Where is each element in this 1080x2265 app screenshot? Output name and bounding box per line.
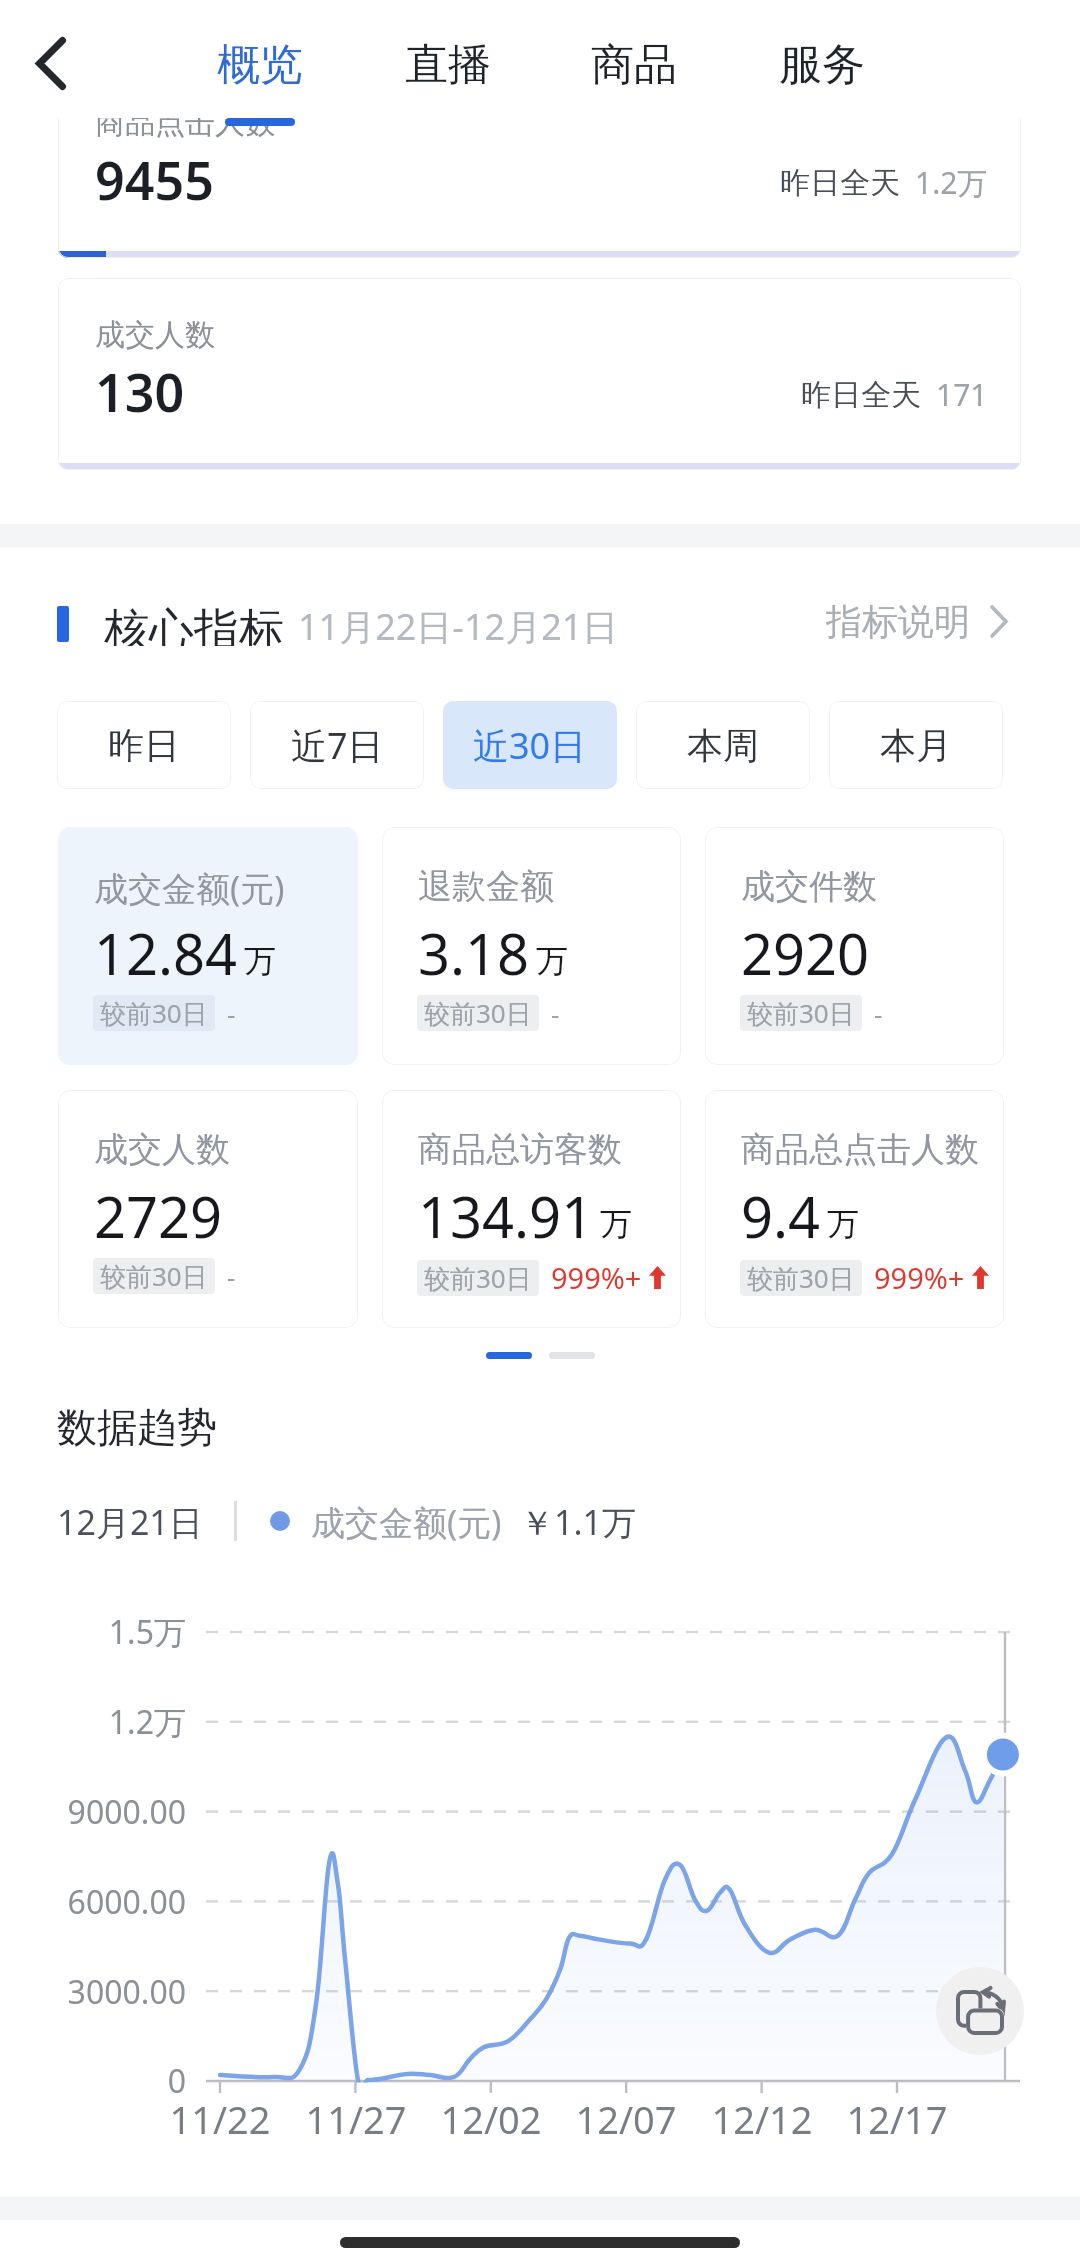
button[interactable]: Back: [0, 0, 104, 118]
staticText: 999%+: [874, 1258, 965, 1297]
staticText: 9455: [95, 144, 214, 215]
staticText: 万: [827, 1204, 859, 1244]
button[interactable]: 商品总访客数: [382, 1090, 681, 1328]
staticText: 万: [536, 941, 568, 981]
staticText: 较前30日: [747, 1260, 855, 1296]
staticText: 退款金额: [418, 865, 554, 908]
button[interactable]: 近7日: [250, 701, 424, 789]
button[interactable]: 商品: [578, 30, 690, 118]
staticText: 3000.00: [0, 1970, 186, 2014]
button[interactable]: 本月: [829, 701, 1003, 789]
staticText: 成交人数: [94, 1128, 230, 1171]
button[interactable]: 成交人数: [58, 1090, 358, 1328]
staticText: 成交金额(元): [94, 865, 285, 911]
staticText: 昨日: [108, 723, 180, 768]
staticText: 9000.00: [0, 1790, 186, 1834]
staticText: 1.2万: [915, 162, 988, 203]
staticText: 昨日全天: [801, 376, 921, 414]
staticText: 成交金额(元): [311, 1499, 502, 1543]
button[interactable]: Switch chart type: [936, 1967, 1024, 2055]
staticText: 本月: [880, 723, 952, 768]
button[interactable]: 本周: [636, 701, 810, 789]
staticText: 商品点击人数: [95, 104, 275, 142]
staticText: 130: [95, 356, 185, 427]
staticText: 万: [600, 1204, 632, 1244]
staticText: 成交件数: [741, 865, 877, 908]
staticText: 134.91: [418, 1178, 594, 1254]
staticText: 商品总点击人数: [741, 1128, 979, 1171]
staticText: 12月21日: [57, 1499, 203, 1543]
staticText: -: [874, 996, 883, 1031]
button[interactable]: 近30日: [443, 701, 617, 789]
button[interactable]: 成交金额(元): [58, 827, 358, 1065]
staticText: 万: [244, 941, 276, 981]
staticText: 11/27: [286, 2093, 426, 2145]
staticText: 数据趋势: [57, 1402, 217, 1452]
button[interactable]: 直播: [392, 30, 504, 118]
staticText: 昨日全天: [780, 164, 900, 202]
staticText: 1.5万: [0, 1610, 186, 1654]
staticText: 0: [0, 2059, 186, 2103]
staticText: 较前30日: [747, 995, 855, 1031]
staticText: 近30日: [473, 721, 587, 770]
staticText: 6000.00: [0, 1880, 186, 1924]
staticText: 9.4: [741, 1178, 821, 1254]
staticText: 服务: [779, 38, 865, 92]
staticText: 12/02: [421, 2093, 561, 2145]
button[interactable]: 概览: [204, 30, 316, 118]
staticText: 999%+: [551, 1258, 642, 1297]
staticText: 12/12: [692, 2093, 832, 2145]
staticText: 近7日: [291, 721, 384, 770]
staticText: 12/07: [556, 2093, 696, 2145]
button[interactable]: 成交人数: [58, 278, 1021, 470]
staticText: 2920: [741, 915, 870, 991]
staticText: 概览: [217, 38, 303, 92]
staticText: 核心指标: [104, 602, 284, 646]
staticText: 较前30日: [424, 1260, 532, 1296]
button[interactable]: 指标说明: [826, 599, 1008, 643]
staticText: 1.2万: [0, 1700, 186, 1744]
button[interactable]: 成交件数: [705, 827, 1004, 1065]
staticText: -: [227, 1259, 236, 1294]
staticText: 本周: [687, 723, 759, 768]
staticText: 指标说明: [826, 599, 970, 643]
staticText: 较前30日: [100, 1258, 208, 1294]
staticText: 较前30日: [100, 995, 208, 1031]
staticText: 11月22日-12月21日: [298, 602, 619, 646]
staticText: 12/17: [827, 2093, 967, 2145]
button[interactable]: 昨日: [57, 701, 231, 789]
button[interactable]: 商品总点击人数: [705, 1090, 1004, 1328]
staticText: 直播: [405, 38, 491, 92]
staticText: 成交人数: [95, 316, 215, 354]
staticText: 171: [936, 374, 988, 415]
staticText: -: [551, 996, 560, 1031]
staticText: ￥1.1万: [520, 1499, 637, 1543]
button[interactable]: 退款金额: [382, 827, 681, 1065]
staticText: 商品总访客数: [418, 1128, 622, 1171]
staticText: 2729: [94, 1178, 223, 1254]
button[interactable]: 商品点击人数: [58, 66, 1021, 258]
button[interactable]: 服务: [766, 30, 878, 118]
staticText: 商品: [591, 38, 677, 92]
staticText: 11/22: [150, 2093, 290, 2145]
staticText: -: [227, 996, 236, 1031]
staticText: 3.18: [418, 915, 530, 991]
staticText: 12.84: [94, 915, 238, 991]
staticText: 较前30日: [424, 995, 532, 1031]
